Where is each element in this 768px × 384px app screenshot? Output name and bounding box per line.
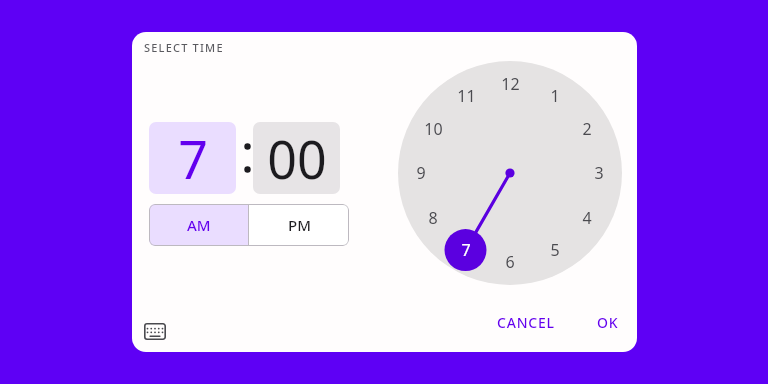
- button[interactable]: Clock face, 7 o'clock selected: [398, 61, 622, 285]
- staticText: 4: [582, 207, 592, 229]
- staticText: 11: [457, 85, 476, 107]
- button[interactable]: 7: [149, 122, 236, 194]
- staticText: 2: [582, 118, 592, 140]
- button[interactable]: 00: [253, 122, 340, 194]
- staticText: 5: [550, 239, 560, 261]
- staticText: 10: [424, 118, 443, 140]
- staticText: PM: [288, 215, 311, 235]
- staticText: 9: [416, 162, 426, 184]
- staticText: OK: [597, 313, 619, 332]
- staticText: AM: [187, 215, 211, 235]
- button[interactable]: OK: [587, 307, 629, 338]
- staticText: 3: [594, 162, 604, 184]
- staticText: 7: [461, 239, 471, 261]
- button[interactable]: Switch to text input: [138, 314, 172, 348]
- button[interactable]: AM: [149, 204, 248, 246]
- staticText: 8: [428, 207, 438, 229]
- staticText: 00: [267, 123, 327, 194]
- staticText: 1: [550, 85, 560, 107]
- button[interactable]: CANCEL: [487, 307, 565, 338]
- staticText: 12: [501, 73, 520, 95]
- staticText: 7: [178, 123, 208, 194]
- staticText: 6: [505, 251, 515, 273]
- staticText: SELECT TIME: [144, 40, 224, 55]
- staticText: CANCEL: [497, 313, 555, 332]
- button[interactable]: PM: [249, 204, 349, 246]
